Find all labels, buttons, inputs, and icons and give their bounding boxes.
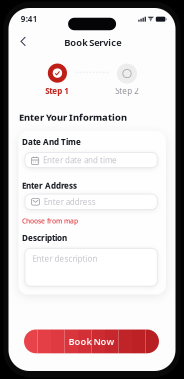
- button[interactable]: Choose from map: [22, 216, 78, 225]
- button[interactable]: Enter date and time: [25, 152, 157, 168]
- button[interactable]: Book Now: [24, 329, 159, 353]
- staticText: Enter address: [44, 196, 96, 207]
- staticText: Enter date and time: [43, 155, 117, 165]
- staticText: Enter Your Information: [19, 111, 127, 123]
- staticText: Step 2: [115, 86, 139, 96]
- staticText: Book Service: [64, 36, 121, 49]
- staticText: Choose from map: [22, 216, 78, 225]
- staticText: Enter description: [32, 253, 97, 264]
- staticText: Date And Time: [22, 137, 81, 147]
- staticText: Description: [22, 233, 67, 243]
- staticText: Enter Address: [22, 180, 77, 191]
- staticText: Step 1: [45, 85, 69, 96]
- button[interactable]: Enter description: [25, 248, 157, 286]
- button[interactable]: Back: [15, 33, 31, 49]
- button[interactable]: Enter address: [25, 194, 157, 209]
- staticText: Book Now: [68, 335, 114, 348]
- staticText: 9:41: [21, 14, 38, 24]
